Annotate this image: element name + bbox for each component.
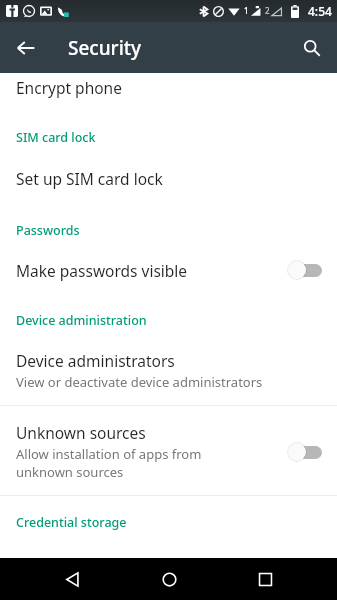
button[interactable]: Unknown sources (0, 421, 337, 482)
staticText: Encrypt phone (16, 77, 122, 98)
staticText: Device administrators (16, 350, 175, 371)
staticText: Passwords (16, 222, 80, 239)
button[interactable]: Encrypt phone (0, 73, 337, 95)
button[interactable]: Home (145, 558, 193, 600)
staticText: Make passwords visible (16, 260, 188, 281)
button[interactable]: Recent apps (241, 558, 289, 600)
staticText: Device administration (16, 312, 147, 329)
staticText: Security (68, 35, 142, 61)
staticText: Unknown sources (16, 422, 146, 443)
staticText: 2 (265, 5, 270, 16)
staticText: SIM card lock (16, 129, 96, 146)
staticText: View or deactivate device administrators (16, 373, 263, 391)
button[interactable]: Search (292, 28, 332, 68)
button[interactable]: Device administrators (0, 349, 337, 392)
staticText: Allow installation of apps from unknown … (16, 445, 219, 481)
staticText: 1 (244, 5, 249, 16)
other: Toggle (287, 441, 323, 463)
staticText: 4:54 (308, 3, 332, 19)
button[interactable]: Make passwords visible (0, 258, 337, 282)
other: Toggle (287, 259, 323, 281)
button[interactable]: Set up SIM card lock (0, 166, 337, 191)
button[interactable]: Back (48, 558, 96, 600)
staticText: Credential storage (16, 514, 127, 531)
button[interactable]: Navigate up (6, 28, 46, 68)
staticText: Set up SIM card lock (16, 168, 163, 189)
